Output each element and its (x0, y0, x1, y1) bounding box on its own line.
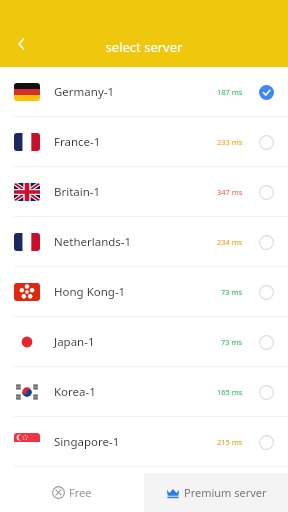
button[interactable]: Free (0, 473, 144, 512)
button[interactable]: Germany-1 (0, 67, 288, 117)
staticText: Britain-1 (54, 184, 217, 200)
staticText: Japan-1 (54, 334, 221, 350)
button[interactable]: Netherlands-1 (0, 217, 288, 267)
button[interactable]: Korea-1 (0, 367, 288, 417)
staticText: 347 ms (217, 187, 243, 197)
button[interactable]: Japan-1 (0, 317, 288, 367)
button[interactable]: France-1 (0, 117, 288, 167)
button[interactable]: Premium server (144, 473, 288, 512)
button[interactable]: Singapore-1 (0, 417, 288, 467)
staticText: Netherlands-1 (54, 234, 217, 250)
staticText: 73 ms (221, 287, 243, 297)
staticText: Germany-1 (54, 84, 217, 100)
staticText: select server (0, 38, 288, 56)
staticText: Korea-1 (54, 384, 217, 400)
staticText: Singapore-1 (54, 434, 217, 450)
staticText: 165 ms (217, 387, 243, 397)
staticText: France-1 (54, 134, 217, 150)
staticText: 73 ms (221, 337, 243, 347)
staticText: 187 ms (217, 87, 243, 97)
button[interactable]: Back (0, 22, 44, 66)
button[interactable]: Britain-1 (0, 167, 288, 217)
button[interactable]: Hong Kong-1 (0, 267, 288, 317)
staticText: Hong Kong-1 (54, 284, 221, 300)
staticText: 233 ms (217, 137, 243, 147)
staticText: 215 ms (217, 437, 243, 447)
button[interactable]: Thailand-1 (0, 467, 288, 512)
staticText: Premium server (184, 485, 267, 500)
staticText: Free (69, 485, 92, 500)
staticText: Thailand-1 (54, 482, 213, 498)
staticText: 234 ms (217, 237, 243, 247)
